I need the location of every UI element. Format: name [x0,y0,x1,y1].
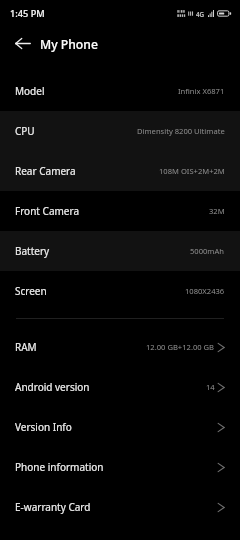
button[interactable]: Front Camera [0,191,240,231]
staticText: 1080X2436 [185,286,225,296]
staticText: CPU [15,124,35,138]
staticText: Battery [15,244,50,258]
button[interactable]: Model [0,71,240,111]
staticText: Phone information [15,460,104,474]
staticText: 4G [196,10,205,18]
staticText: Screen [15,284,47,298]
staticText: Front Camera [15,204,80,218]
button[interactable]: Android version [0,367,240,407]
staticText: 108M OIS+2M+2M [159,166,225,176]
button[interactable]: Back [7,27,39,59]
button[interactable]: Phone information [0,447,240,487]
staticText: Rear Camera [15,164,76,178]
button[interactable]: Screen [0,271,240,311]
staticText: Android version [15,380,90,394]
staticText: 12.00 GB+12.00 GB [146,342,215,352]
button[interactable]: E-warranty Card [0,487,240,527]
staticText: E-warranty Card [15,500,91,514]
staticText: 14 [206,382,215,392]
staticText: 32M [209,206,225,216]
staticText: Model [15,84,45,98]
staticText: Infinix X6871 [178,86,225,96]
staticText: 1:45 PM [10,7,45,20]
button[interactable]: RAM [0,327,240,367]
staticText: Version Info [15,420,72,434]
staticText: RAM [15,340,37,354]
button[interactable]: Rear Camera [0,151,240,191]
staticText: 5000mAh [190,246,225,256]
staticText: My Phone [40,36,98,53]
button[interactable]: Battery [0,231,240,271]
staticText: Dimensity 8200 Ultimate [137,126,225,136]
button[interactable]: Version Info [0,407,240,447]
button[interactable]: CPU [0,111,240,151]
